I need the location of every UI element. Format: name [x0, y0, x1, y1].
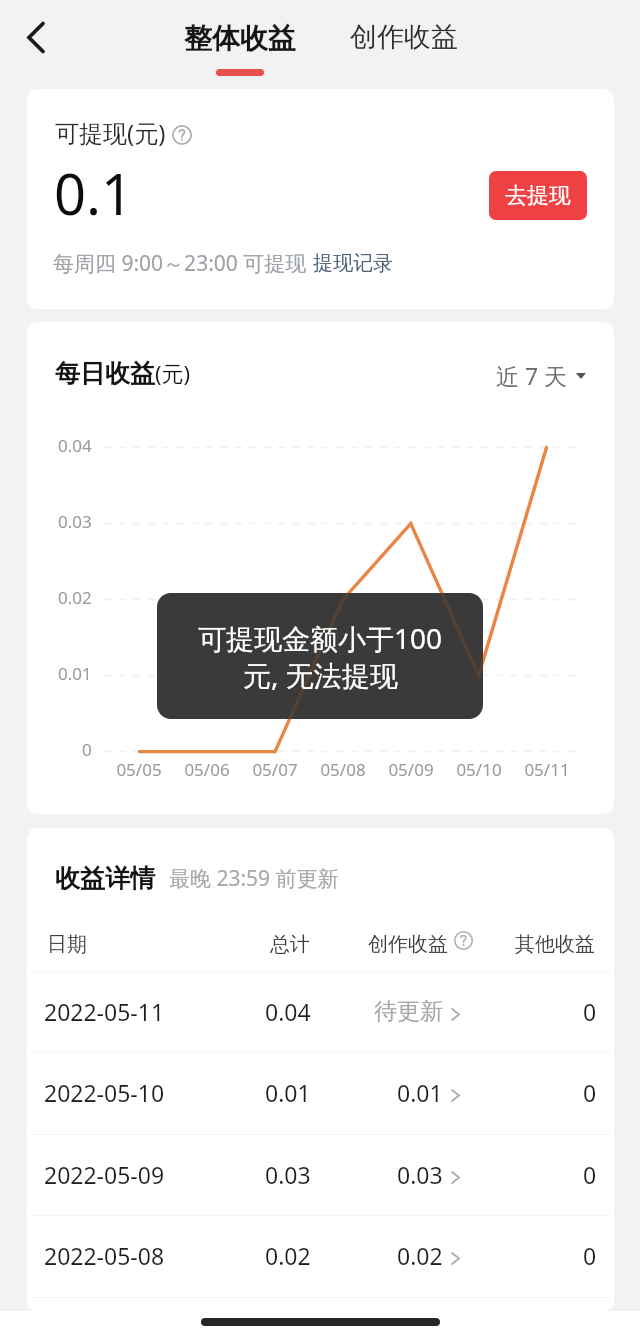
staticText: 总计 [270, 932, 310, 957]
button[interactable]: 2022-05-08 [27, 1215, 614, 1296]
staticText: 2022-05-11 [44, 996, 165, 1027]
staticText: 0 [82, 738, 92, 761]
button[interactable]: Back [1, 3, 71, 71]
button[interactable]: 提现记录 [313, 251, 393, 276]
staticText: 0.01 [265, 1077, 311, 1108]
staticText: 近 7 天 [496, 360, 568, 391]
staticText: 去提现 [505, 182, 571, 210]
staticText: 元, 无法提现 [243, 656, 398, 694]
button[interactable]: 去提现 [489, 171, 587, 220]
staticText: 2022-05-08 [44, 1240, 165, 1271]
staticText: 0 [583, 1077, 597, 1108]
staticText: 日期 [47, 932, 87, 957]
staticText: 0.03 [58, 510, 92, 533]
staticText: 05/08 [320, 758, 366, 781]
staticText: 0.1 [54, 155, 134, 231]
button[interactable]: 近 7 天 [496, 360, 586, 391]
staticText: 05/11 [524, 758, 570, 781]
staticText: 最晚 23:59 前更新 [169, 864, 339, 893]
staticText: 创作收益 [350, 20, 458, 54]
staticText: 0.04 [265, 996, 311, 1027]
staticText: 每周四 9:00～23:00 可提现 [53, 249, 307, 278]
staticText: 0.03 [265, 1159, 311, 1190]
staticText: 0 [583, 996, 597, 1027]
staticText: 0.04 [58, 434, 92, 457]
staticText: 0.01 [58, 662, 92, 685]
button[interactable]: 整体收益 [173, 9, 306, 77]
staticText: (元) [155, 358, 191, 388]
staticText: 05/10 [456, 758, 502, 781]
staticText: 收益详情 [55, 863, 155, 894]
button[interactable]: 2022-05-09 [27, 1134, 614, 1215]
staticText: 0.02 [265, 1240, 311, 1271]
staticText: 可提现金额小于100 [198, 619, 443, 657]
staticText: 每日收益 [55, 358, 155, 389]
staticText: 0.02 [58, 586, 92, 609]
staticText: 05/07 [252, 758, 298, 781]
button[interactable]: 创作收益 [337, 9, 470, 59]
staticText: 05/05 [116, 758, 162, 781]
staticText: 0 [583, 1159, 597, 1190]
staticText: 可提现(元) [55, 116, 166, 149]
staticText: 整体收益 [184, 21, 296, 56]
staticText: 待更新 [374, 997, 443, 1026]
button[interactable]: 2022-05-10 [27, 1052, 614, 1133]
staticText: 0.02 [397, 1240, 443, 1271]
staticText: 提现记录 [313, 251, 393, 276]
staticText: 其他收益 [515, 932, 595, 957]
staticText: 0 [583, 1240, 597, 1271]
staticText: 2022-05-09 [44, 1159, 165, 1190]
staticText: 05/09 [388, 758, 434, 781]
button[interactable]: 2022-05-11 [27, 971, 614, 1052]
staticText: 创作收益 [368, 932, 448, 957]
staticText: 0.01 [397, 1077, 443, 1108]
staticText: 0.03 [397, 1159, 443, 1190]
staticText: 05/06 [184, 758, 230, 781]
staticText: 2022-05-10 [44, 1077, 165, 1108]
